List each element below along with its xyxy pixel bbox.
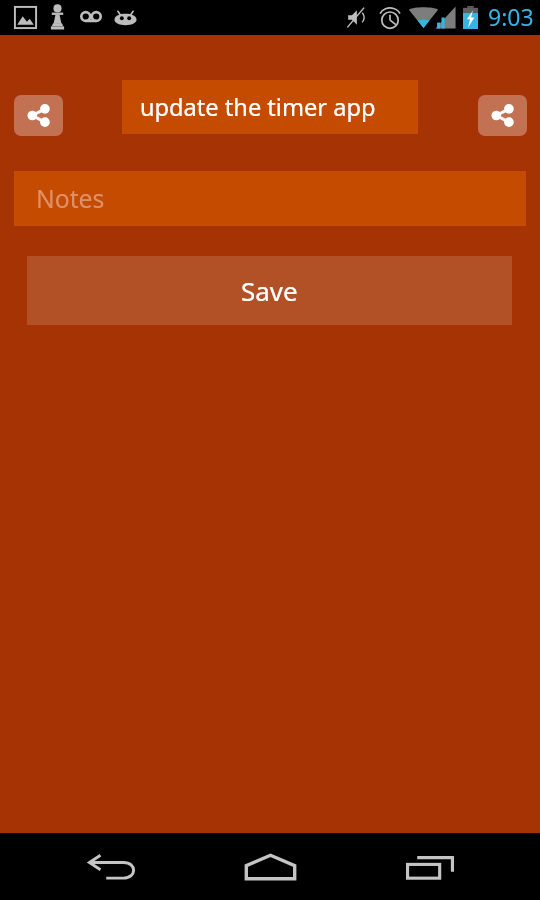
button[interactable]: Recent apps: [384, 833, 476, 900]
staticText: Save: [241, 273, 298, 308]
button[interactable]: Back: [66, 833, 158, 900]
staticText: update the timer app: [140, 91, 376, 123]
button[interactable]: Save: [27, 256, 512, 325]
staticText: 9:03: [488, 1, 534, 32]
button[interactable]: update the timer app: [122, 80, 418, 134]
staticText: Notes: [36, 182, 105, 216]
button[interactable]: Share: [478, 95, 527, 136]
button[interactable]: Home: [224, 833, 316, 900]
button[interactable]: Notes: [14, 171, 526, 226]
button[interactable]: Share: [14, 95, 63, 136]
